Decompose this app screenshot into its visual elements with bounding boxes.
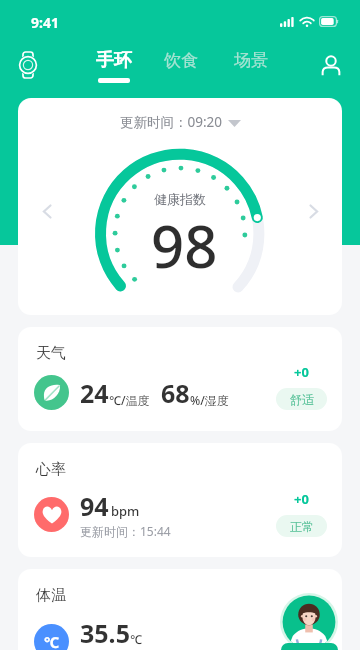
staticText: 天气	[36, 344, 66, 363]
staticText: 24	[80, 376, 109, 410]
button[interactable]: 心率	[18, 443, 342, 557]
staticText: 手环	[96, 49, 132, 72]
button[interactable]: Profile	[311, 45, 351, 85]
staticText: 更新时间：15:44	[80, 523, 171, 539]
button[interactable]: Ask doctor	[281, 643, 338, 650]
staticText: +0	[294, 490, 309, 508]
staticText: 场景	[234, 50, 268, 71]
button[interactable]: 饮食	[164, 50, 198, 82]
button[interactable]: 舒适	[276, 388, 327, 410]
button[interactable]: 更新时间：09:20	[120, 113, 241, 131]
staticText: ℃	[130, 631, 142, 647]
staticText: 饮食	[164, 50, 198, 71]
staticText: 正常	[290, 519, 314, 534]
staticText: 健康指数	[154, 191, 206, 207]
button[interactable]: 体温	[18, 569, 342, 650]
button[interactable]: 正常	[276, 515, 327, 537]
button[interactable]: Band	[9, 42, 47, 80]
staticText: 35.5	[80, 616, 130, 650]
staticText: ℃/温度	[109, 392, 150, 408]
staticText: 舒适	[290, 392, 314, 407]
staticText: 9:41	[31, 13, 59, 32]
staticText: +0	[294, 363, 309, 381]
button[interactable]: Doctor consultation	[280, 593, 338, 650]
staticText: %/湿度	[190, 392, 229, 408]
staticText: 68	[161, 376, 190, 410]
button[interactable]: Next	[298, 196, 328, 226]
button[interactable]: Previous	[32, 196, 62, 226]
staticText: 98	[151, 206, 218, 285]
staticText: ℃	[44, 632, 60, 650]
staticText: 更新时间：09:20	[120, 113, 223, 131]
staticText: 体温	[36, 586, 66, 605]
button[interactable]: 场景	[234, 50, 268, 82]
staticText: bpm	[111, 502, 140, 520]
button[interactable]: 手环	[96, 49, 132, 83]
button[interactable]: 天气	[18, 327, 342, 431]
staticText: 94	[80, 489, 109, 523]
staticText: 心率	[36, 460, 66, 479]
